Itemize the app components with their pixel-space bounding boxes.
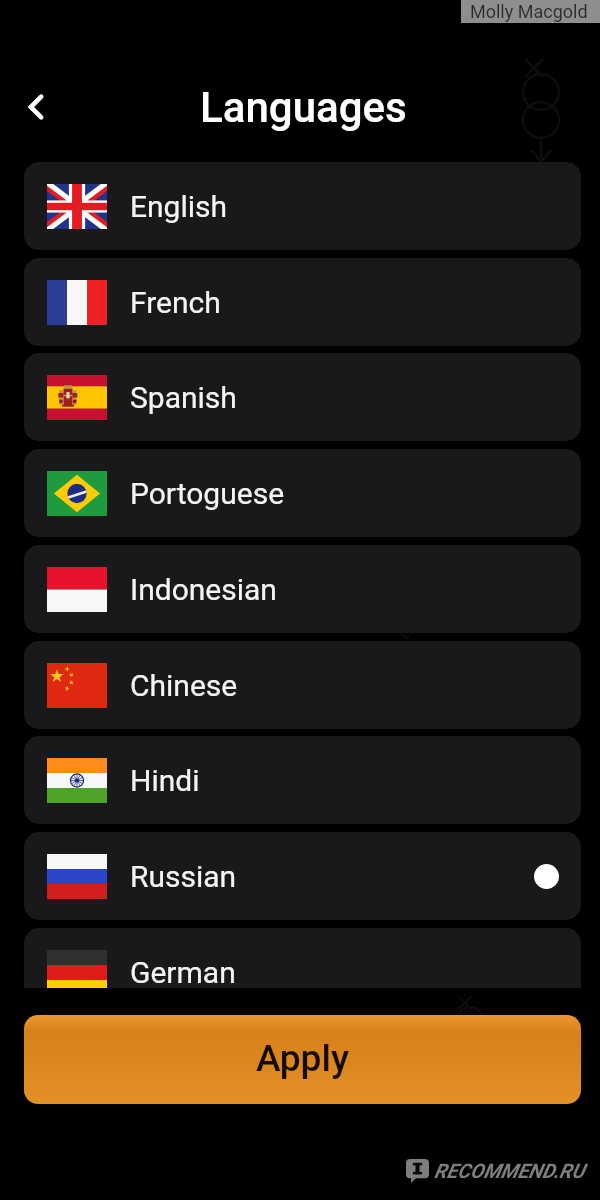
- staticText: English: [130, 189, 228, 224]
- button[interactable]: Back: [14, 85, 58, 129]
- button[interactable]: English: [24, 162, 581, 250]
- button[interactable]: Hindi: [24, 736, 581, 824]
- staticText: Spanish: [130, 380, 237, 415]
- staticText: Hindi: [130, 763, 200, 798]
- button[interactable]: German: [24, 928, 581, 988]
- staticText: RECOMMEND.RU: [434, 1159, 585, 1182]
- button[interactable]: French: [24, 258, 581, 346]
- staticText: Russian: [130, 859, 237, 894]
- button[interactable]: Portoguese: [24, 449, 581, 537]
- staticText: Indonesian: [130, 572, 277, 607]
- button[interactable]: Indonesian: [24, 545, 581, 633]
- staticText: Apply: [256, 1037, 349, 1080]
- button[interactable]: Spanish: [24, 353, 581, 441]
- staticText: Chinese: [130, 668, 238, 703]
- button[interactable]: Chinese: [24, 641, 581, 729]
- staticText: Portoguese: [130, 476, 285, 511]
- button[interactable]: Russian: [24, 832, 581, 920]
- button[interactable]: Apply: [24, 1015, 581, 1104]
- staticText: Molly Macgold: [470, 1, 588, 22]
- staticText: Languages: [200, 83, 407, 132]
- staticText: German: [130, 955, 236, 988]
- staticText: French: [130, 285, 221, 320]
